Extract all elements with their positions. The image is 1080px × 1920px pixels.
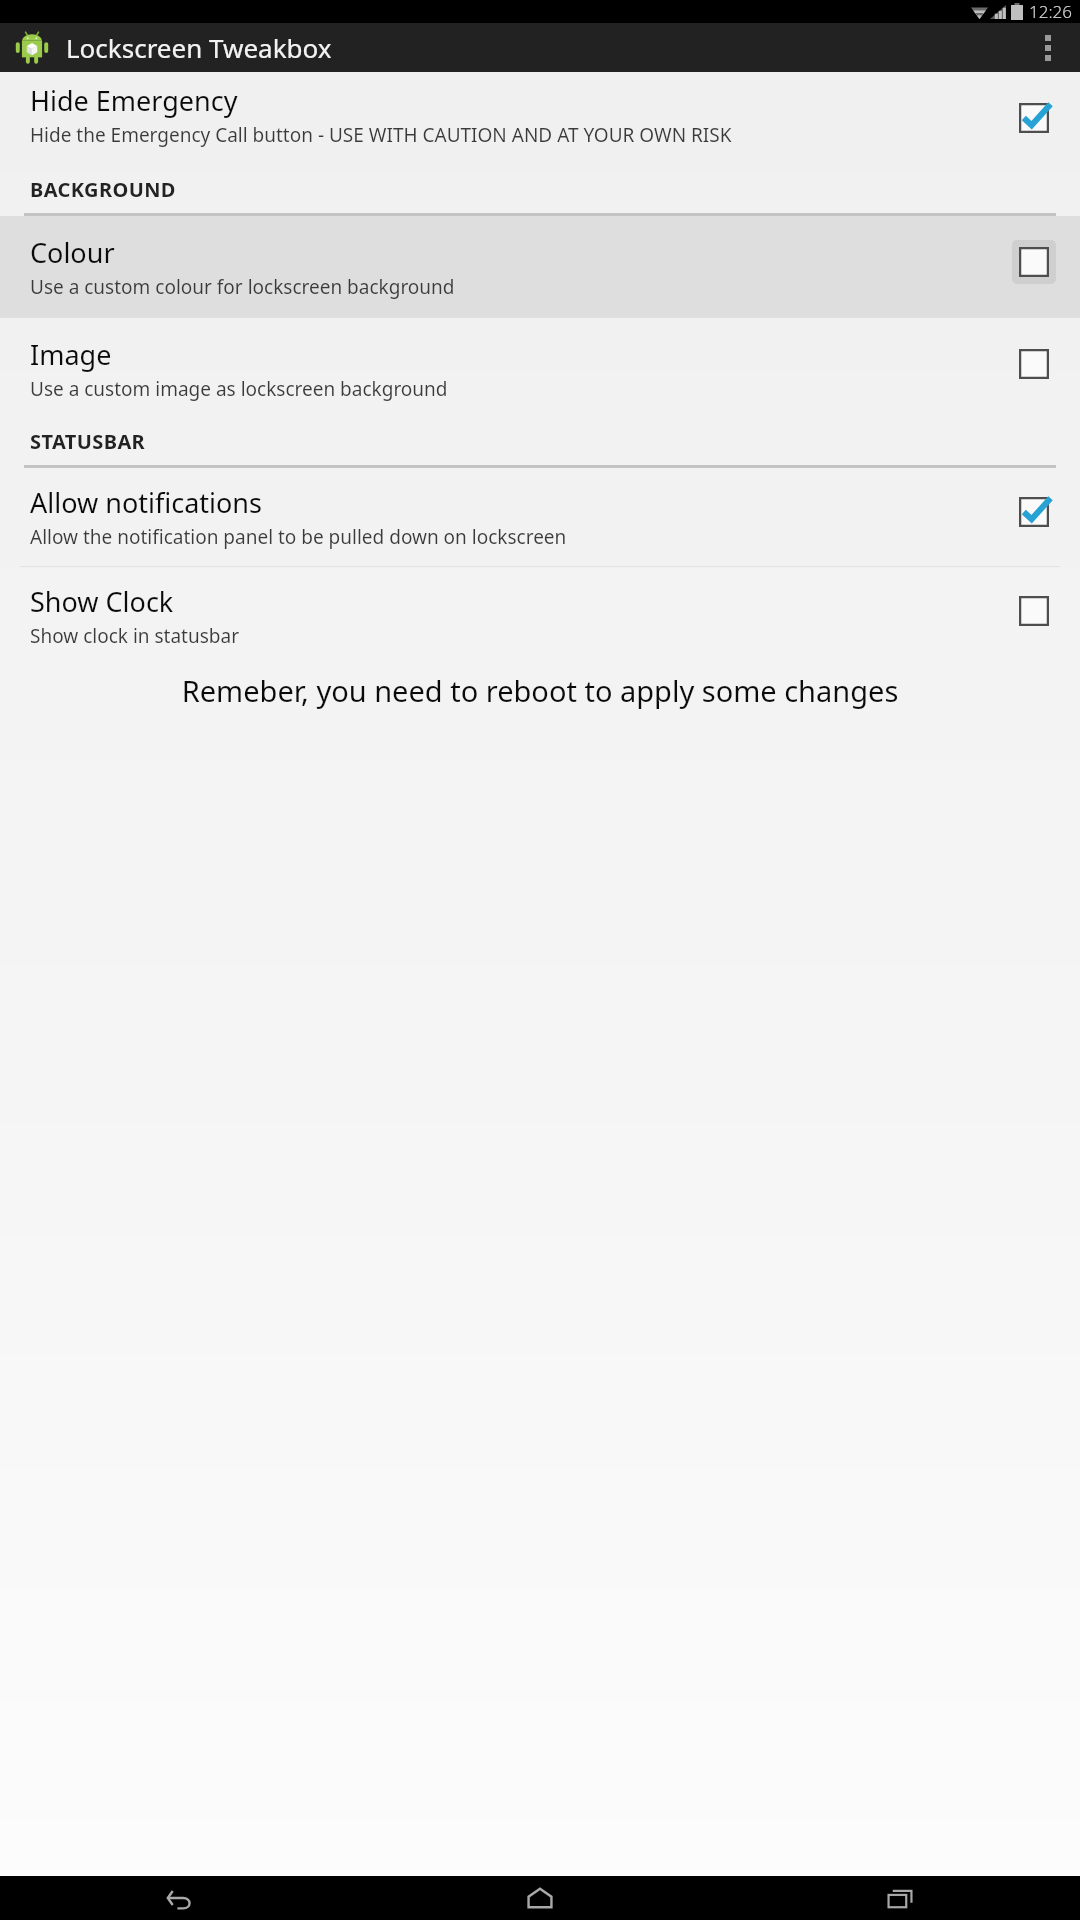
staticText: Allow the notification panel to be pulle…: [30, 524, 567, 550]
staticText: Remeber, you need to reboot to apply som…: [14, 671, 1066, 710]
staticText: Show clock in statusbar: [30, 623, 239, 649]
button[interactable]: Colour: [0, 216, 1080, 318]
staticText: Use a custom image as lockscreen backgro…: [30, 376, 448, 402]
staticText: Colour: [30, 234, 115, 271]
staticText: Allow notifications: [30, 484, 262, 521]
staticText: Use a custom colour for lockscreen backg…: [30, 274, 455, 300]
button[interactable]: Allow notifications: [0, 468, 1080, 566]
button[interactable]: More options: [1026, 23, 1070, 72]
staticText: BACKGROUND: [30, 176, 176, 203]
button[interactable]: Show Clock: [0, 567, 1080, 655]
staticText: STATUSBAR: [30, 428, 146, 455]
button[interactable]: Hide Emergency: [0, 72, 1080, 168]
button[interactable]: Recent apps: [720, 1876, 1080, 1920]
staticText: Image: [30, 336, 112, 373]
button[interactable]: Back: [0, 1876, 360, 1920]
staticText: Hide the Emergency Call button - USE WIT…: [30, 122, 732, 148]
staticText: Show Clock: [30, 583, 174, 620]
staticText: 12:26: [1029, 0, 1072, 23]
staticText: Hide Emergency: [30, 82, 238, 119]
button[interactable]: Home: [360, 1876, 720, 1920]
button[interactable]: Image: [0, 318, 1080, 420]
staticText: Lockscreen Tweakbox: [66, 30, 332, 65]
